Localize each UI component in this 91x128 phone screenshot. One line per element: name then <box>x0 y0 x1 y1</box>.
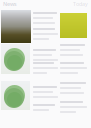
button[interactable]: Featured story photo <box>1 10 31 43</box>
button[interactable]: Story photo <box>1 81 30 110</box>
button[interactable]: Story photo <box>1 44 30 74</box>
button[interactable]: Feature card <box>60 13 87 38</box>
staticText: News <box>3 0 17 8</box>
staticText: Today <box>73 0 88 8</box>
